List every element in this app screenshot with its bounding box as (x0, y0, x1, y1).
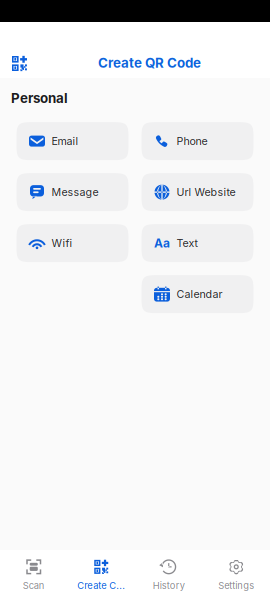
staticText: History (153, 580, 185, 591)
button[interactable]: Email (16, 122, 128, 160)
button[interactable]: Calendar (141, 275, 253, 313)
staticText: Url Website (176, 186, 235, 199)
staticText: Wifi (51, 237, 72, 250)
staticText: Personal (11, 90, 68, 106)
button[interactable]: Wifi (16, 224, 128, 262)
staticText: Calendar (176, 288, 222, 301)
staticText: Aa (154, 236, 170, 250)
button[interactable]: Url Website (141, 173, 253, 211)
button[interactable]: Aa (141, 224, 253, 262)
staticText: Text (176, 237, 197, 250)
button[interactable]: Message (16, 173, 128, 211)
staticText: Message (51, 186, 98, 199)
staticText: Settings (218, 580, 254, 591)
staticText: Phone (176, 135, 207, 148)
button[interactable]: Phone (141, 122, 253, 160)
staticText: Create C... (77, 580, 125, 591)
staticText: Scan (23, 580, 45, 591)
staticText: Create QR Code (98, 55, 201, 71)
button[interactable]: New QR code (0, 48, 39, 78)
button[interactable]: Settings (202, 550, 270, 600)
button[interactable]: History (135, 550, 202, 600)
button[interactable]: Scan (0, 550, 67, 600)
button[interactable]: Create C... (67, 550, 135, 600)
staticText: Email (51, 135, 78, 148)
